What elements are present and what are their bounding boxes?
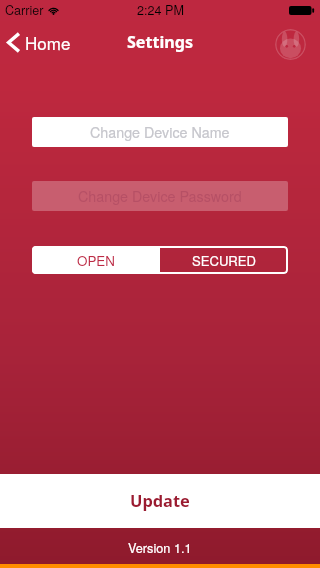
staticText: Update bbox=[130, 489, 190, 511]
staticText: 2:24 PM bbox=[137, 1, 184, 19]
button[interactable]: Update bbox=[0, 474, 320, 528]
staticText: Change Device Password bbox=[78, 186, 242, 206]
staticText: Settings bbox=[127, 31, 193, 53]
staticText: Change Device Name bbox=[90, 122, 230, 142]
staticText: OPEN bbox=[77, 251, 115, 270]
button[interactable]: Home bbox=[7, 30, 71, 54]
staticText: Carrier bbox=[5, 1, 44, 19]
staticText: SECURED bbox=[192, 251, 257, 270]
button[interactable]: Account bbox=[275, 29, 306, 60]
button[interactable]: SECURED bbox=[160, 246, 288, 274]
staticText: Home bbox=[25, 30, 71, 54]
button[interactable]: OPEN bbox=[32, 246, 160, 274]
button[interactable]: Change Device Name bbox=[32, 117, 288, 147]
staticText: Version 1.1 bbox=[128, 538, 192, 556]
button[interactable]: Change Device Password bbox=[32, 181, 288, 211]
